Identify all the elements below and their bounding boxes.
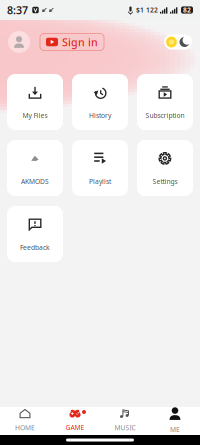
staticText: Sign in: [62, 35, 98, 49]
staticText: 122: [146, 6, 158, 14]
staticText: 82: [183, 6, 191, 14]
button[interactable]: History: [72, 74, 128, 130]
staticText: HOME: [15, 423, 35, 432]
staticText: Subscription: [145, 111, 184, 120]
staticText: My Files: [22, 111, 47, 120]
button[interactable]: Playlist: [72, 140, 128, 196]
staticText: ME: [170, 425, 180, 434]
staticText: MUSIC: [114, 423, 135, 432]
button[interactable]: Sign in: [40, 33, 104, 50]
staticText: $1: [136, 6, 144, 14]
button[interactable]: AKMODS: [7, 140, 63, 196]
button[interactable]: GAME: [50, 407, 100, 435]
button[interactable]: Feedback: [7, 206, 63, 262]
button[interactable]: HOME: [0, 407, 50, 435]
staticText: AKMODS: [21, 177, 49, 186]
button[interactable]: Settings: [137, 140, 193, 196]
staticText: 8:37: [7, 3, 28, 17]
button[interactable]: My Files: [7, 74, 63, 130]
button[interactable]: MUSIC: [100, 407, 150, 435]
button[interactable]: Account: [8, 31, 30, 53]
button[interactable]: Subscription: [137, 74, 193, 130]
staticText: Feedback: [20, 243, 50, 252]
button[interactable]: Appearance toggle: [164, 34, 192, 49]
staticText: Settings: [152, 177, 177, 186]
staticText: History: [89, 111, 111, 120]
staticText: GAME: [65, 423, 84, 432]
staticText: Playlist: [89, 177, 111, 186]
button[interactable]: ME: [150, 407, 200, 435]
